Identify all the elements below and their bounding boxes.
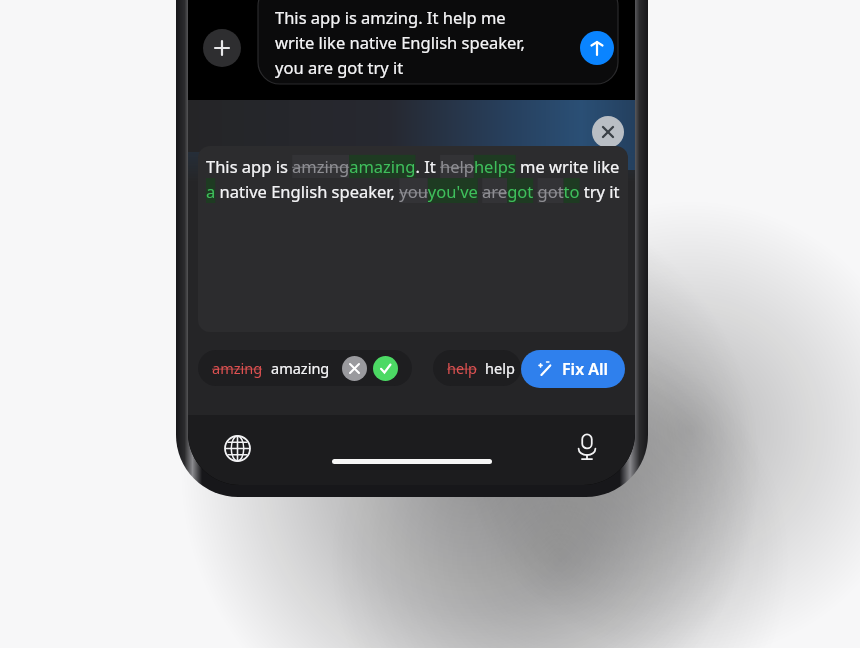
button[interactable]: amzing: [198, 350, 412, 386]
button[interactable]: Accept suggestion: [373, 356, 398, 381]
button[interactable]: Change language: [217, 428, 257, 468]
staticText: help: [447, 358, 477, 378]
button[interactable]: Add attachment: [203, 29, 241, 67]
button[interactable]: Fix All: [521, 350, 625, 388]
staticText: amzing: [212, 358, 263, 378]
staticText: amazing: [271, 358, 330, 378]
staticText: helps: [485, 358, 521, 378]
button[interactable]: Dismiss suggestion: [342, 356, 367, 381]
button[interactable]: Voice input: [567, 427, 607, 467]
button[interactable]: help: [433, 350, 521, 386]
button[interactable]: This app is amzing. It help me write lik…: [258, 0, 618, 84]
button[interactable]: Close: [592, 116, 624, 148]
staticText: This app is amzingamazing. It helphelps …: [206, 155, 621, 203]
staticText: Fix All: [562, 358, 609, 380]
button[interactable]: Send: [580, 31, 614, 65]
staticText: This app is amzing. It help me write lik…: [275, 6, 525, 78]
button[interactable]: This app is amzingamazing. It helphelps …: [198, 146, 628, 332]
